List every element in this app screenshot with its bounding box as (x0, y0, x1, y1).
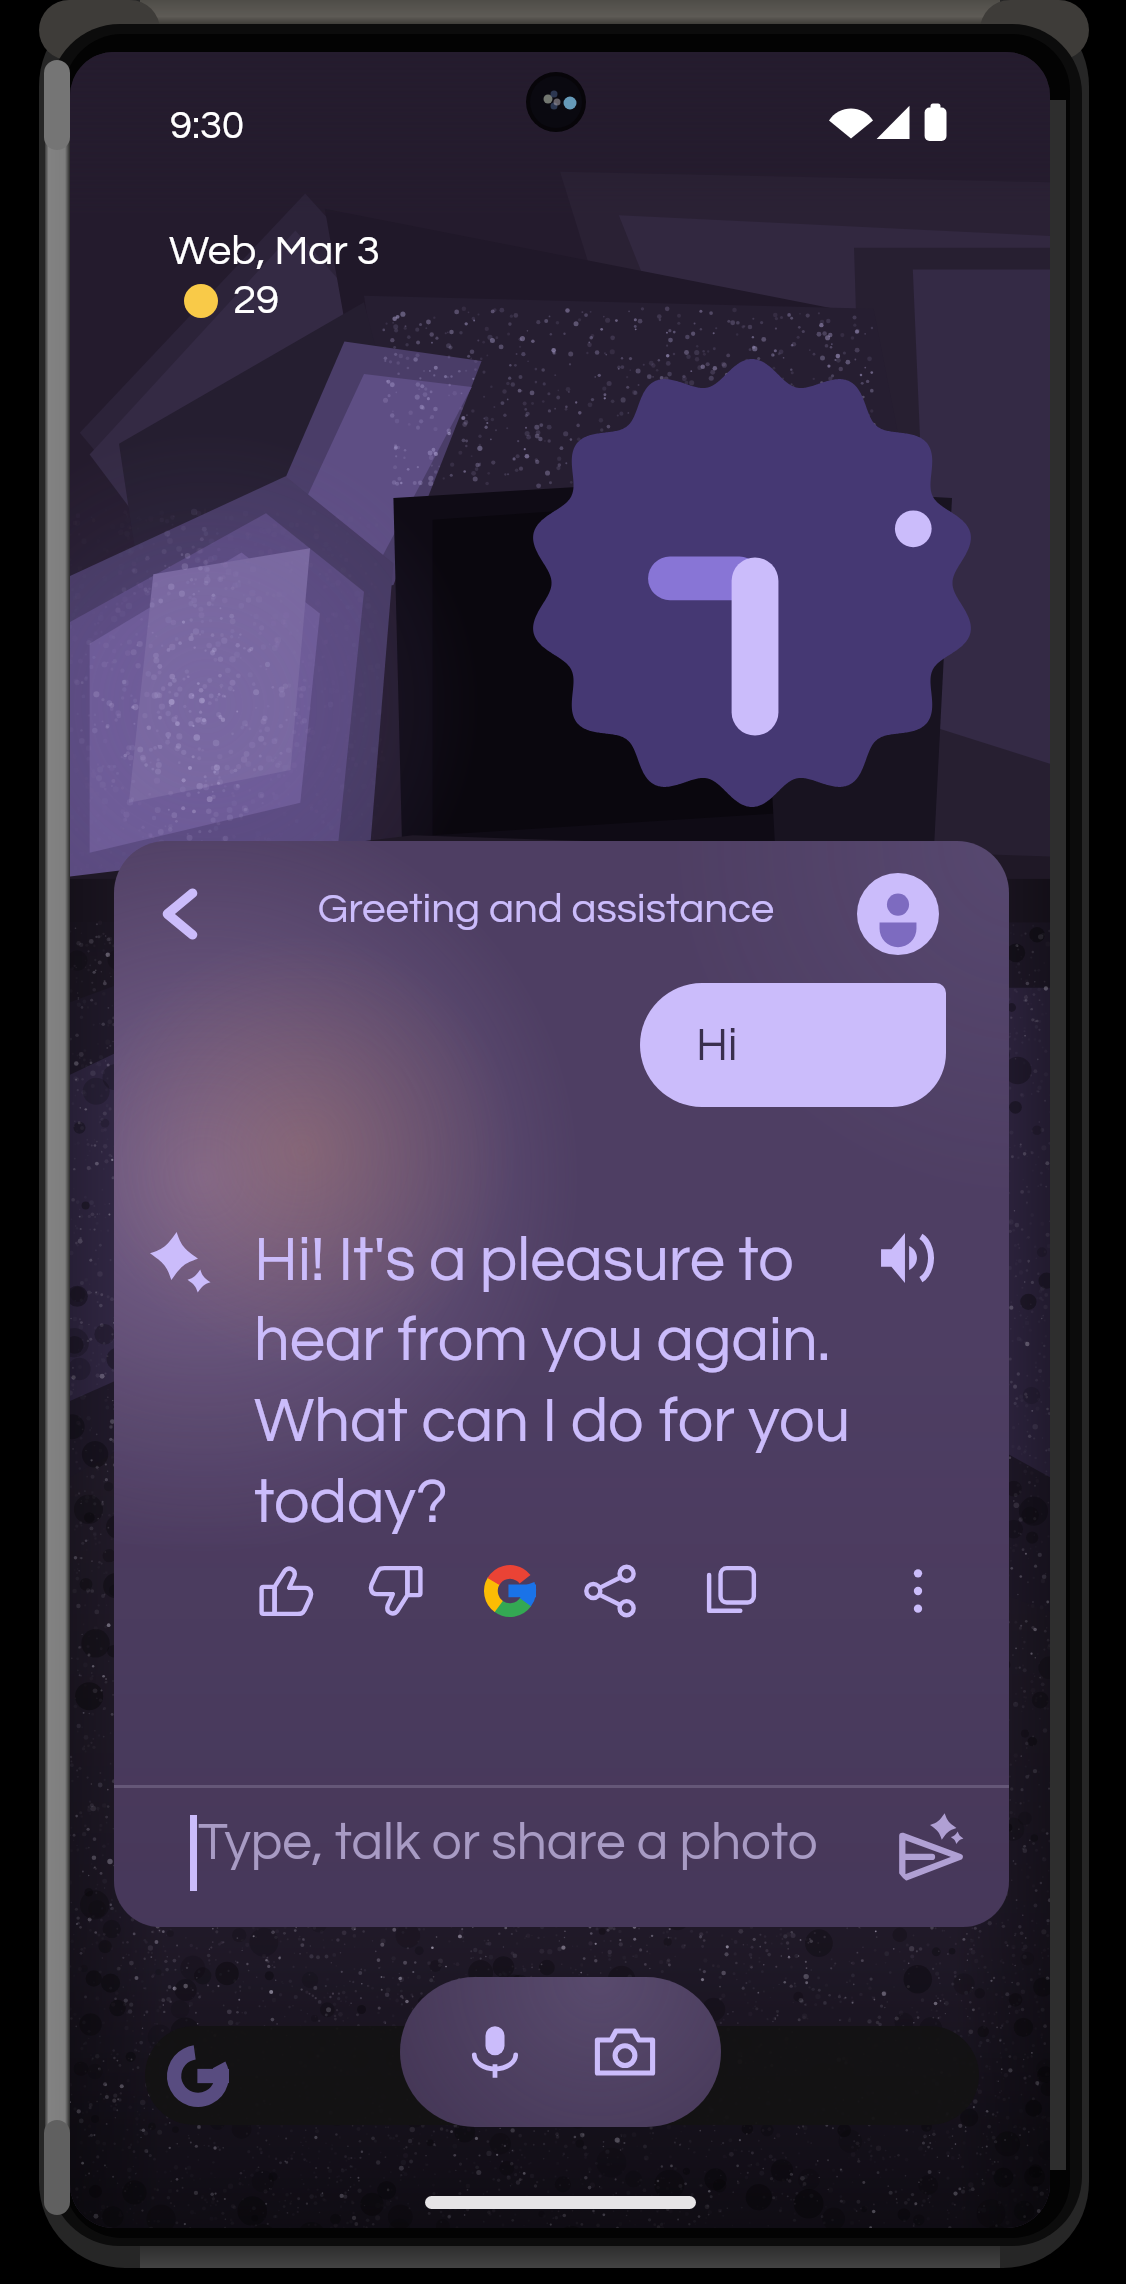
button[interactable]: More options (881, 1554, 955, 1628)
button[interactable]: Search with Google (473, 1554, 547, 1628)
button[interactable]: Web, Mar 3 (166, 230, 377, 322)
button[interactable]: Dislike (360, 1554, 434, 1628)
button[interactable]: Copy (695, 1554, 769, 1628)
button[interactable]: Type, talk or share a photo (114, 1788, 1009, 1918)
button[interactable]: Clock widget (528, 359, 976, 807)
button[interactable]: Send (891, 1808, 973, 1890)
button[interactable] (400, 1977, 721, 2127)
button[interactable]: Account (857, 873, 939, 955)
button[interactable]: Share (574, 1554, 648, 1628)
staticText: Hi! It's a pleasure to hear from you aga… (254, 1228, 879, 1536)
staticText: Web, Mar 3 (169, 230, 380, 273)
button[interactable]: Back (140, 874, 220, 954)
button[interactable]: Hi (640, 983, 946, 1107)
staticText: 29 (233, 279, 280, 322)
staticText: Type, talk or share a photo (198, 1816, 818, 1871)
button[interactable]: Read aloud (866, 1218, 946, 1298)
button[interactable]: Search (145, 2026, 979, 2125)
staticText: 9:30 (170, 105, 245, 146)
button[interactable]: Like (248, 1554, 322, 1628)
staticText: Hi (696, 1022, 738, 1069)
staticText: Greeting and assistance (246, 888, 846, 931)
